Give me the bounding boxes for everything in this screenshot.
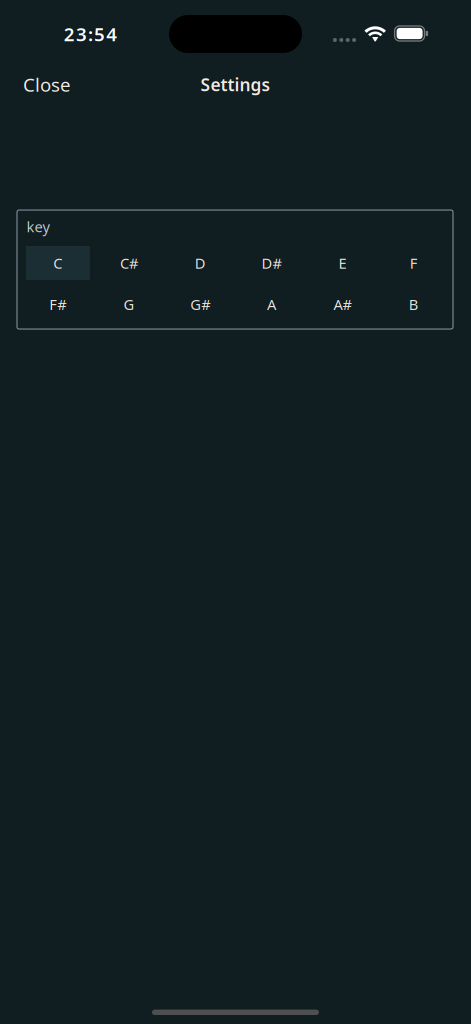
staticText: D#: [261, 253, 281, 273]
button[interactable]: C#: [97, 246, 161, 280]
staticText: B: [409, 295, 419, 314]
button[interactable]: A#: [311, 287, 375, 321]
staticText: A: [267, 295, 276, 314]
button[interactable]: G#: [168, 287, 232, 321]
button[interactable]: D: [168, 246, 232, 280]
staticText: Settings: [200, 73, 270, 96]
staticText: E: [339, 253, 347, 273]
staticText: A#: [334, 295, 352, 314]
staticText: key: [26, 217, 49, 236]
button[interactable]: D#: [239, 246, 303, 280]
button[interactable]: E: [311, 246, 375, 280]
button[interactable]: B: [382, 287, 446, 321]
button[interactable]: C: [26, 246, 90, 280]
button[interactable]: F#: [26, 287, 90, 321]
button[interactable]: A: [239, 287, 303, 321]
staticText: C#: [120, 253, 138, 273]
staticText: F: [410, 253, 418, 273]
button[interactable]: Close: [0, 61, 94, 108]
staticText: G#: [190, 295, 210, 314]
staticText: F#: [49, 295, 66, 314]
staticText: 23:54: [64, 22, 117, 46]
staticText: C: [53, 253, 62, 273]
staticText: D: [195, 253, 206, 273]
staticText: G: [123, 295, 134, 314]
staticText: Close: [23, 72, 71, 97]
button[interactable]: G: [97, 287, 161, 321]
button[interactable]: F: [382, 246, 446, 280]
